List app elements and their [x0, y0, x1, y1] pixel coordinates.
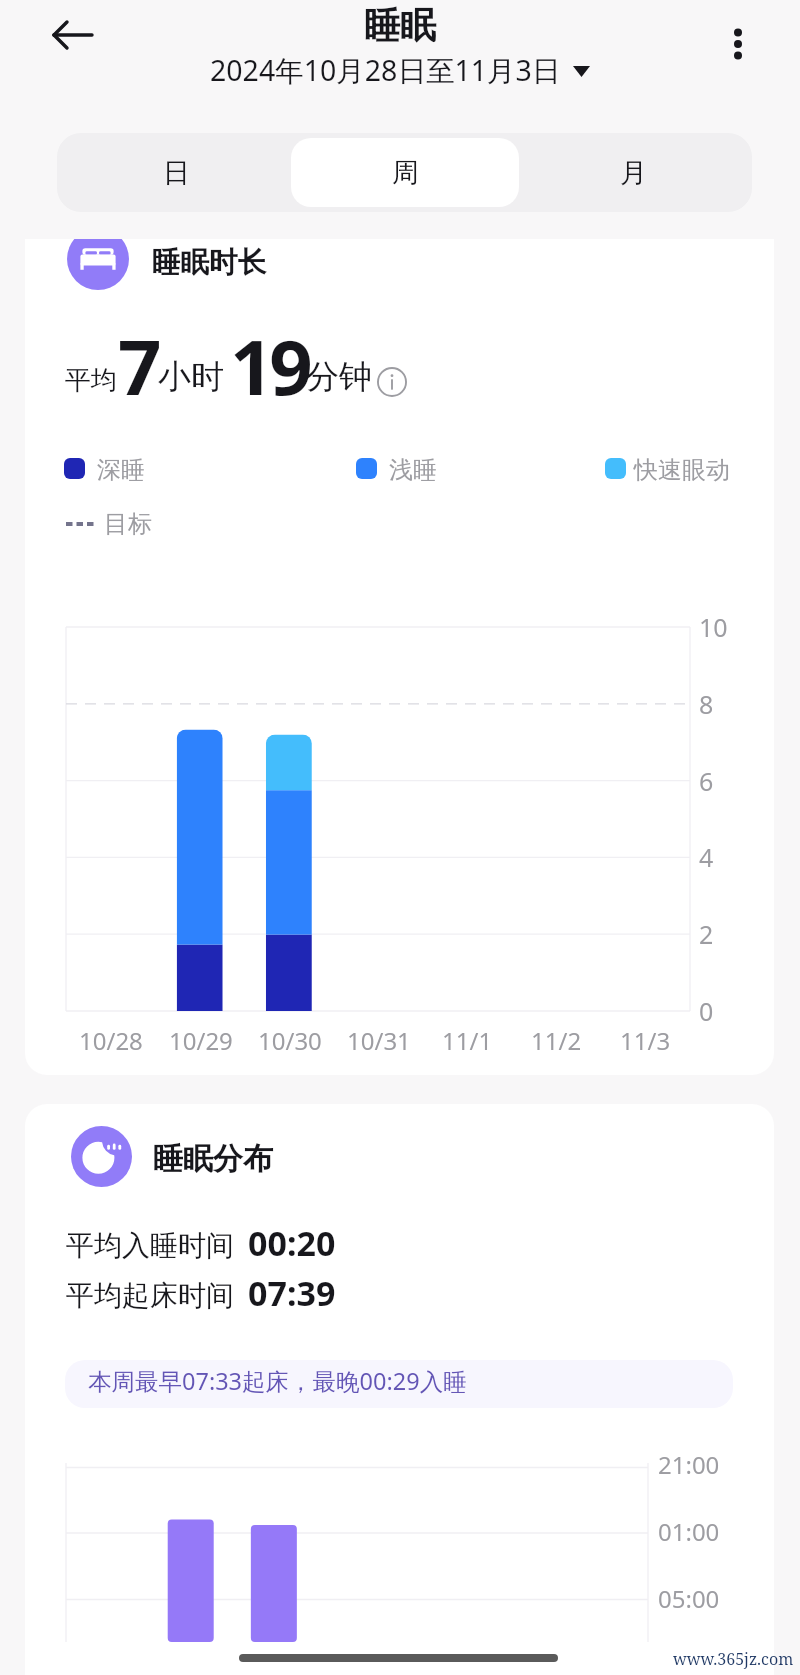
- button[interactable]: Info: [377, 367, 407, 397]
- staticText: 分钟: [306, 356, 372, 398]
- button[interactable]: 月: [519, 138, 747, 207]
- staticText: 6: [699, 764, 714, 798]
- staticText: 睡眠分布: [153, 1140, 273, 1178]
- staticText: 平均: [65, 364, 117, 397]
- staticText: 11/2: [531, 1024, 582, 1057]
- staticText: 10/30: [258, 1024, 322, 1057]
- staticText: 2024年10月28日至11月3日: [210, 51, 561, 90]
- staticText: 深睡: [97, 455, 145, 485]
- staticText: 10/28: [79, 1024, 143, 1057]
- staticText: 05:00: [658, 1582, 720, 1615]
- button[interactable]: 日: [62, 138, 291, 207]
- staticText: 日: [163, 156, 190, 190]
- staticText: 0: [699, 994, 714, 1028]
- button[interactable]: 周: [291, 138, 519, 207]
- staticText: 浅睡: [389, 455, 437, 485]
- staticText: 00:20: [248, 1220, 336, 1266]
- staticText: 10/29: [169, 1024, 233, 1057]
- staticText: 11/1: [442, 1024, 493, 1057]
- staticText: www.365jz.com: [673, 1648, 794, 1670]
- button[interactable]: More options: [705, 11, 771, 77]
- staticText: 睡眠时长: [152, 245, 266, 281]
- staticText: 10: [699, 610, 728, 644]
- button[interactable]: Back: [40, 2, 106, 68]
- staticText: 7: [118, 314, 158, 418]
- staticText: 月: [620, 156, 647, 190]
- staticText: 周: [392, 156, 419, 190]
- staticText: 平均入睡时间: [66, 1228, 234, 1263]
- staticText: 07:39: [248, 1270, 336, 1316]
- staticText: 平均起床时间: [66, 1278, 234, 1313]
- staticText: 11/3: [620, 1024, 671, 1057]
- staticText: 小时: [158, 356, 224, 398]
- staticText: 10/31: [347, 1024, 411, 1057]
- staticText: 本周最早07:33起床，最晚00:29入睡: [88, 1365, 467, 1397]
- staticText: 19: [230, 314, 309, 418]
- staticText: 21:00: [658, 1448, 720, 1481]
- staticText: 快速眼动: [634, 455, 730, 485]
- staticText: 睡眠: [364, 3, 436, 48]
- staticText: 4: [699, 840, 714, 874]
- staticText: 2: [699, 917, 714, 951]
- staticText: 目标: [104, 509, 152, 539]
- staticText: 01:00: [658, 1515, 720, 1548]
- staticText: 8: [699, 687, 714, 721]
